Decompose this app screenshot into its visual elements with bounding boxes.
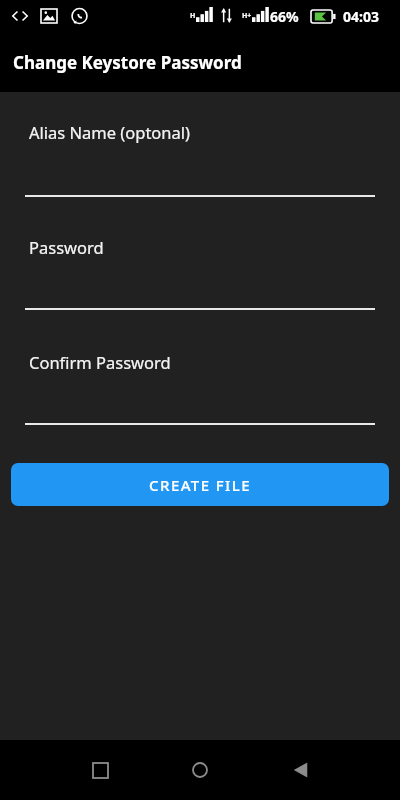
button[interactable] [25, 347, 375, 427]
button[interactable]: CREATE FILE [11, 463, 389, 506]
staticText: Confirm Password [29, 351, 171, 373]
staticText: 66% [270, 7, 299, 26]
staticText: H+ [242, 11, 252, 21]
staticText: Password [29, 236, 104, 258]
staticText: 04:03 [343, 7, 379, 26]
button[interactable]: Home [170, 740, 230, 800]
staticText: H [190, 11, 196, 21]
staticText: Change Keystore Password [13, 51, 242, 74]
staticText: Alias Name (optonal) [29, 121, 191, 143]
button[interactable] [25, 117, 375, 199]
staticText: CREATE FILE [149, 475, 251, 495]
button[interactable]: Back [270, 740, 330, 800]
button[interactable] [25, 232, 375, 312]
button[interactable]: Recent apps [70, 740, 130, 800]
